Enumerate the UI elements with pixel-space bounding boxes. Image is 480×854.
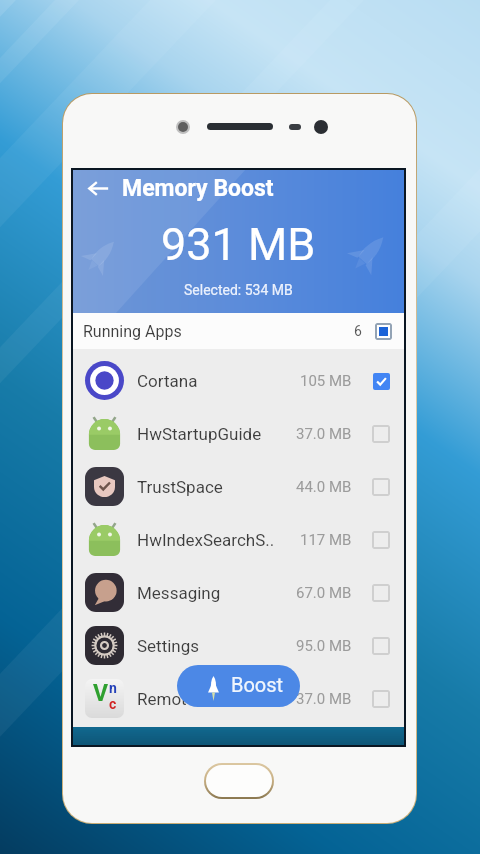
staticText: 931 MB [161,218,316,271]
button[interactable]: Select Cortana [372,372,390,390]
button[interactable]: Boost [177,665,300,707]
staticText: 95.0 MB [296,637,352,655]
button[interactable]: HwIndexSearchS.. [73,513,404,566]
staticText: Settings [137,636,200,656]
staticText: 117 MB [300,531,352,549]
staticText: 37.0 MB [296,425,352,443]
button[interactable]: Back [85,175,111,201]
staticText: Messaging [137,583,221,603]
button[interactable]: Select HwIndexSearchS.. [372,531,390,549]
staticText: Cortana [137,371,198,391]
staticText: Boost [231,673,284,696]
staticText: Selected: 534 MB [184,282,293,298]
staticText: V [93,680,109,707]
staticText: HwIndexSearchS.. [137,530,275,550]
button[interactable]: Select TrustSpace [372,478,390,496]
staticText: n [109,680,117,696]
staticText: Running Apps [83,322,182,341]
button[interactable]: Select HwStartupGuide [372,425,390,443]
button[interactable]: HwStartupGuide [73,407,404,460]
button[interactable]: Settings [73,619,404,672]
button[interactable]: Select Settings [372,637,390,655]
staticText: 44.0 MB [296,478,352,496]
staticText: c [109,696,117,712]
button[interactable]: Select all [375,323,392,340]
staticText: 105 MB [300,372,352,390]
staticText: TrustSpace [137,477,223,497]
staticText: RemoteVNC [137,689,230,709]
button[interactable]: V [73,672,404,725]
button[interactable]: Select Messaging [372,584,390,602]
button[interactable]: Select RemoteVNC [372,690,390,708]
button[interactable]: TrustSpace [73,460,404,513]
staticText: HwStartupGuide [137,424,262,444]
button[interactable]: Messaging [73,566,404,619]
staticText: 6 [354,323,362,339]
button[interactable]: Cortana [73,354,404,407]
staticText: 67.0 MB [296,584,352,602]
staticText: Memory Boost [122,175,274,202]
staticText: 37.0 MB [296,690,352,708]
